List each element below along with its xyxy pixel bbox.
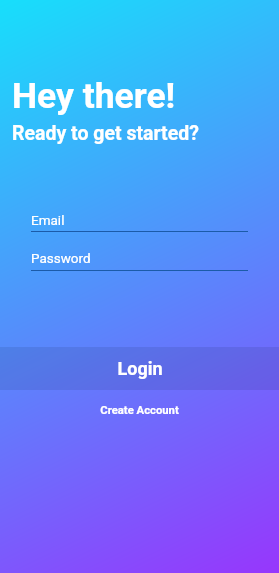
staticText: Email: [31, 212, 65, 228]
button[interactable]: Password: [31, 244, 248, 274]
button[interactable]: Email: [31, 206, 248, 236]
staticText: Hey there!: [12, 75, 176, 117]
staticText: Ready to get started?: [12, 122, 199, 145]
button[interactable]: Create Account: [0, 399, 279, 421]
button[interactable]: Login: [0, 347, 279, 390]
staticText: Create Account: [100, 404, 179, 417]
staticText: Password: [31, 250, 91, 266]
staticText: Login: [117, 358, 163, 379]
